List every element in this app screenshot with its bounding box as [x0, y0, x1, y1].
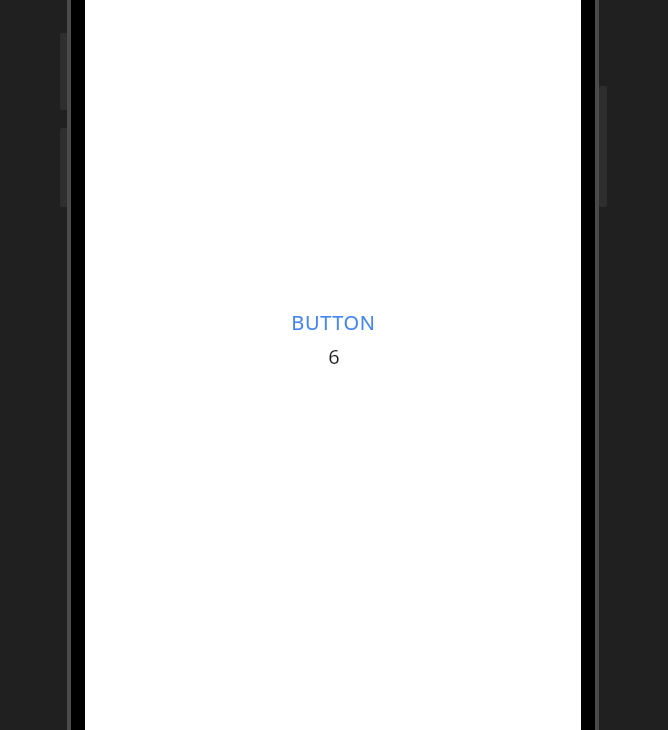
button[interactable]: BUTTON: [283, 307, 384, 338]
staticText: 6: [328, 343, 340, 370]
staticText: BUTTON: [291, 309, 376, 336]
button[interactable]: Volume down: [60, 128, 68, 207]
button[interactable]: Volume up: [60, 33, 68, 110]
